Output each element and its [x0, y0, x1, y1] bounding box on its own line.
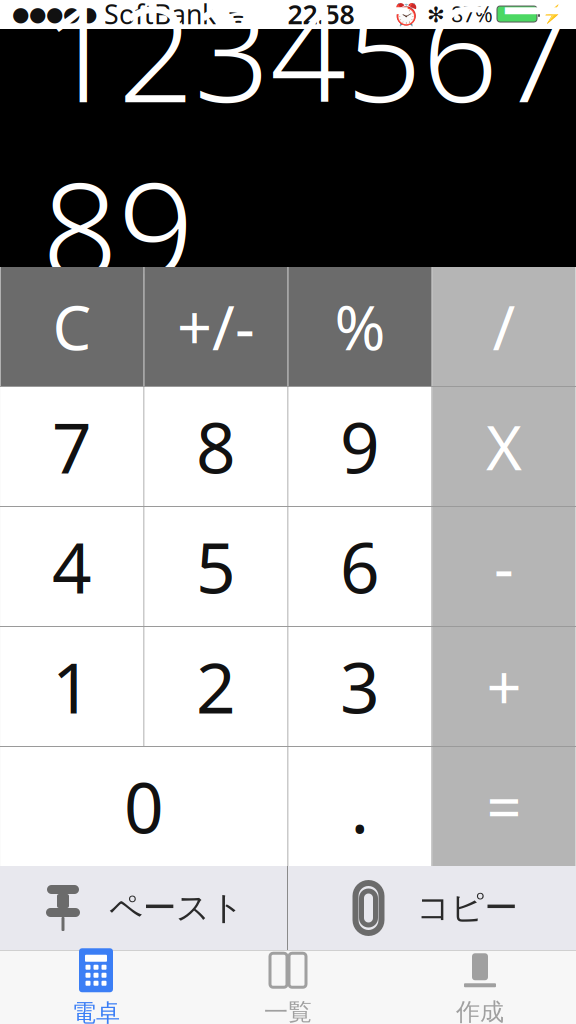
staticText: ペースト	[109, 887, 244, 928]
staticText: SoftBank	[97, 0, 216, 32]
button[interactable]: +	[432, 627, 575, 746]
button[interactable]: %	[288, 267, 431, 386]
button[interactable]: 6	[288, 507, 431, 626]
staticText: ᯤ	[216, 0, 249, 29]
staticText: +	[486, 646, 521, 727]
staticText: ●●●●●	[12, 3, 97, 25]
staticText: ⏰ ✻ 87%	[393, 0, 493, 28]
button[interactable]: 1	[0, 627, 143, 746]
staticText: 一覧	[264, 997, 312, 1024]
button[interactable]: =	[432, 747, 575, 866]
staticText: 6	[340, 520, 380, 613]
staticText: X	[486, 406, 522, 487]
button[interactable]: 3	[288, 627, 431, 746]
button[interactable]: 9	[288, 387, 431, 506]
staticText: 1	[52, 640, 92, 733]
staticText: 2	[196, 640, 236, 733]
button[interactable]: 一覧	[192, 951, 384, 1024]
staticText: 9	[340, 400, 380, 493]
staticText: -	[494, 526, 514, 607]
button[interactable]: -	[432, 507, 575, 626]
staticText: ⚡	[542, 4, 564, 24]
button[interactable]: 7	[0, 387, 143, 506]
button[interactable]: 2	[144, 627, 287, 746]
staticText: 5	[196, 520, 236, 613]
staticText: 作成	[456, 997, 504, 1024]
button[interactable]: 8	[144, 387, 287, 506]
staticText: 電卓	[72, 998, 120, 1024]
button[interactable]: X	[432, 387, 575, 506]
staticText: 0	[124, 760, 164, 853]
staticText: コピー	[416, 887, 517, 928]
button[interactable]: /	[432, 267, 575, 386]
button[interactable]: .	[288, 747, 431, 866]
staticText: C	[52, 286, 91, 367]
staticText: 3	[340, 640, 380, 733]
staticText: 7	[52, 400, 92, 493]
staticText: +/-	[177, 286, 255, 367]
staticText: 4	[52, 520, 92, 613]
staticText: .	[350, 760, 369, 853]
button[interactable]: C	[0, 267, 143, 386]
button[interactable]: 5	[144, 507, 287, 626]
staticText: %	[334, 286, 385, 367]
button[interactable]: 4	[0, 507, 143, 626]
staticText: 22:58	[287, 0, 354, 32]
button[interactable]: ペースト	[0, 866, 287, 950]
staticText: =	[486, 766, 521, 847]
staticText: 123456789	[42, 0, 574, 316]
button[interactable]: 作成	[384, 951, 576, 1024]
button[interactable]: +/-	[144, 267, 287, 386]
button[interactable]: コピー	[288, 866, 576, 950]
button[interactable]: 電卓	[0, 951, 192, 1024]
staticText: 8	[196, 400, 236, 493]
staticText: /	[492, 286, 515, 367]
button[interactable]: 0	[0, 747, 287, 866]
